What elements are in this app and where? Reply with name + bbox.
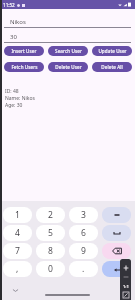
staticText: ID: 48 — [5, 88, 19, 95]
staticText: 4 — [15, 227, 20, 239]
button[interactable]: Nikos — [0, 12, 135, 28]
staticText: Nikos — [10, 18, 26, 26]
staticText: Age: 30 — [5, 102, 23, 109]
staticText: 11:52 — [3, 2, 15, 8]
staticText: Name: Nikos — [5, 95, 35, 102]
staticText: 1 — [15, 209, 20, 221]
button[interactable]: Minus — [102, 207, 131, 223]
staticText: 8 — [48, 245, 53, 257]
button[interactable]: Actual size — [122, 282, 130, 290]
button[interactable]: 8 — [36, 243, 65, 259]
button[interactable]: 0 — [36, 261, 65, 277]
button[interactable]: 6 — [69, 225, 98, 241]
button[interactable]: Delete All — [92, 62, 132, 72]
staticText: 9 — [81, 245, 86, 257]
button[interactable]: Space — [102, 225, 131, 241]
staticText: 0 — [48, 263, 53, 275]
staticText: 5 — [48, 227, 53, 239]
button[interactable]: Delete User — [48, 62, 88, 72]
button[interactable]: Zoom out — [122, 273, 130, 281]
staticText: 30 — [10, 33, 17, 41]
button[interactable]: 1 — [3, 207, 32, 223]
button[interactable]: 30 — [0, 27, 135, 43]
staticText: 7 — [15, 245, 20, 257]
staticText: Insert User — [11, 48, 37, 54]
staticText: Fetch Users — [11, 64, 38, 70]
button[interactable]: 3 — [69, 207, 98, 223]
button[interactable]: 7 — [3, 243, 32, 259]
button[interactable]: . — [69, 261, 98, 277]
staticText: 6 — [81, 227, 86, 239]
button[interactable]: 9 — [69, 243, 98, 259]
staticText: 3 — [81, 209, 86, 221]
button[interactable]: 5 — [36, 225, 65, 241]
button[interactable]: Enter — [102, 261, 131, 277]
button[interactable]: Hide keyboard — [11, 286, 20, 295]
button[interactable]: , — [3, 261, 32, 277]
button[interactable]: Backspace — [102, 243, 131, 259]
button[interactable]: Update User — [92, 46, 132, 56]
staticText: 1:1 — [123, 284, 129, 289]
button[interactable]: Insert User — [4, 46, 44, 56]
staticText: Update User — [98, 48, 127, 54]
staticText: . — [82, 263, 85, 275]
staticText: , — [16, 263, 19, 275]
button[interactable]: 2 — [36, 207, 65, 223]
button[interactable]: Zoom in — [122, 264, 130, 272]
button[interactable]: Fetch Users — [4, 62, 44, 72]
button[interactable]: Search User — [48, 46, 88, 56]
other: Zoom controls — [120, 259, 131, 300]
button[interactable]: 4 — [3, 225, 32, 241]
button[interactable]: Expand — [122, 291, 130, 299]
staticText: 2 — [48, 209, 53, 221]
staticText: Delete All — [101, 64, 123, 70]
staticText: Search User — [55, 48, 82, 54]
staticText: Delete User — [55, 64, 82, 70]
